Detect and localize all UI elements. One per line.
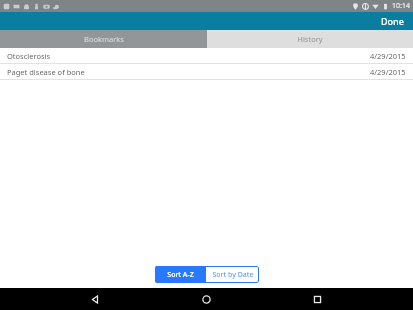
button[interactable]: Sort A-Z — [155, 266, 206, 283]
button[interactable]: History — [207, 30, 413, 48]
staticText: Done — [381, 15, 404, 27]
button[interactable]: Otosclerosis — [0, 48, 413, 64]
button[interactable]: Done — [372, 12, 413, 30]
staticText: Sort by Date — [212, 270, 254, 280]
button[interactable]: Recent apps — [302, 288, 332, 310]
staticText: 10:14 — [392, 1, 410, 11]
staticText: 4/29/2015 — [370, 67, 406, 77]
button[interactable]: Paget disease of bone — [0, 64, 413, 80]
staticText: History — [297, 34, 323, 44]
button[interactable]: Back — [80, 288, 110, 310]
staticText: 4/29/2015 — [370, 51, 406, 61]
staticText: Bookmarks — [84, 34, 124, 44]
button[interactable]: Home — [191, 288, 221, 310]
button[interactable]: Sort by Date — [206, 266, 259, 283]
staticText: Paget disease of bone — [7, 67, 85, 77]
staticText: Otosclerosis — [7, 51, 51, 61]
staticText: Sort A-Z — [167, 270, 194, 280]
button[interactable]: Bookmarks — [0, 30, 207, 48]
